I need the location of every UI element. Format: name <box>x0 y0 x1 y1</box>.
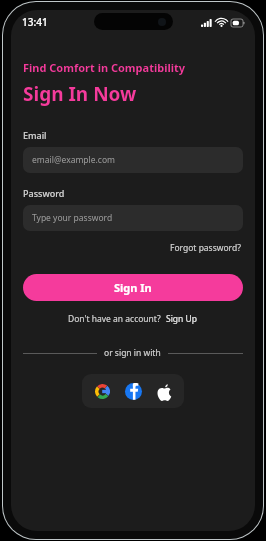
button[interactable]: Forgot password? <box>168 240 243 256</box>
staticText: Type your password <box>32 212 113 224</box>
button[interactable]: Sign in with Apple <box>153 380 175 402</box>
staticText: Find Comfort in Compatibility <box>23 60 186 75</box>
staticText: Sign In Now <box>23 81 137 107</box>
button[interactable]: Sign in with Facebook <box>122 380 144 402</box>
button[interactable]: Type your password <box>23 205 243 231</box>
staticText: Forgot password? <box>170 242 241 254</box>
staticText: Password <box>23 187 65 199</box>
button[interactable]: Sign In <box>23 274 243 301</box>
staticText: Email <box>23 129 47 141</box>
staticText: or sign in with <box>104 347 161 359</box>
staticText: email@example.com <box>32 154 116 166</box>
staticText: Sign In <box>114 280 152 295</box>
staticText: Sign Up <box>166 313 197 325</box>
staticText: 13:41 <box>22 15 48 29</box>
button[interactable]: Sign in with Google <box>91 380 113 402</box>
button[interactable]: Sign Up <box>165 312 198 326</box>
staticText: Don't have an account? <box>68 313 161 325</box>
button[interactable]: email@example.com <box>23 147 243 173</box>
